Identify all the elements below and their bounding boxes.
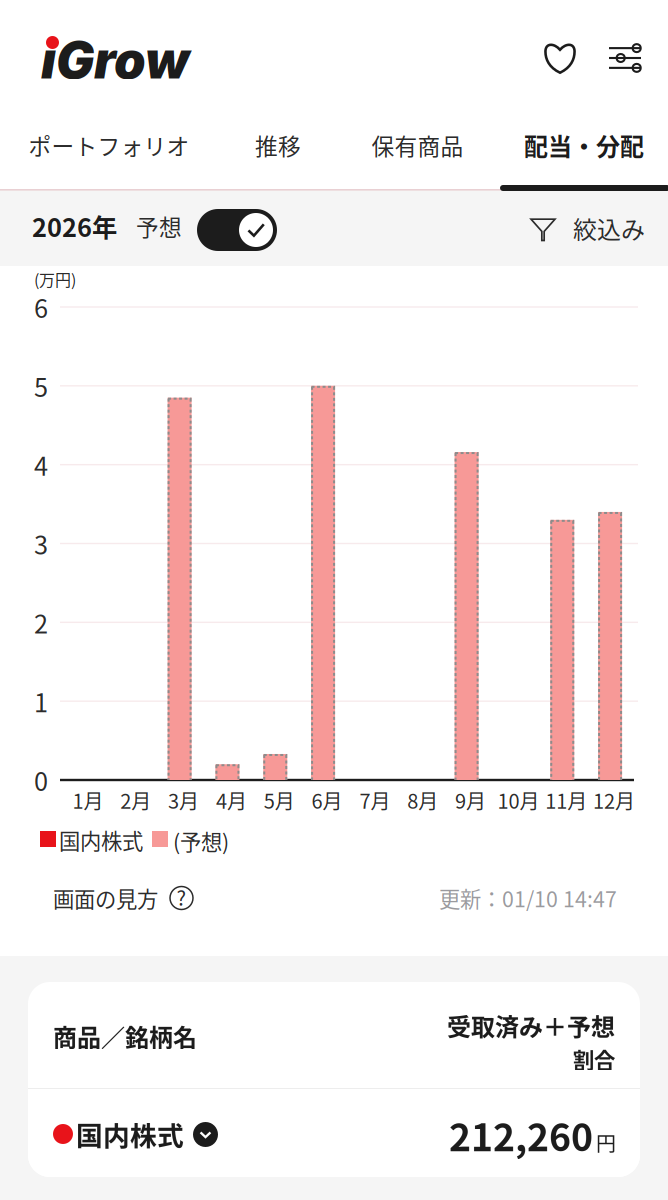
- button[interactable]: 保有商品: [365, 125, 470, 165]
- staticText: 10月: [497, 785, 539, 814]
- staticText: 国内株式: [59, 825, 143, 855]
- staticText: 国内株式: [76, 1115, 184, 1153]
- staticText: 更新：01/10 14:47: [439, 883, 617, 913]
- staticText: (予想): [173, 826, 229, 856]
- staticText: 4: [34, 446, 48, 483]
- staticText: 9月: [455, 785, 486, 814]
- staticText: 1月: [72, 785, 103, 814]
- staticText: 絞込み: [573, 211, 645, 245]
- staticText: 6月: [312, 785, 343, 814]
- staticText: 2026年: [32, 208, 117, 244]
- button[interactable]: 予想表示切替: [197, 209, 277, 251]
- staticText: 0: [34, 762, 48, 798]
- staticText: 212,260: [449, 1108, 593, 1162]
- button[interactable]: 絞込み: [530, 208, 645, 248]
- staticText: 6: [34, 289, 48, 325]
- staticText: ポートフォリオ: [28, 129, 189, 161]
- staticText: 5: [34, 367, 48, 404]
- staticText: 3: [34, 525, 48, 562]
- staticText: 商品／銘柄名: [53, 1019, 197, 1053]
- staticText: 予想: [136, 210, 182, 242]
- button[interactable]: 推移: [248, 125, 308, 165]
- staticText: 2: [34, 604, 48, 641]
- button[interactable]: お気に入り: [544, 42, 576, 74]
- staticText: 3月: [168, 785, 199, 814]
- staticText: 1: [34, 683, 48, 719]
- staticText: 11月: [545, 785, 587, 814]
- staticText: 割合: [573, 1044, 615, 1075]
- staticText: 4月: [216, 785, 247, 814]
- staticText: 5月: [264, 785, 295, 814]
- staticText: 受取済み＋予想: [447, 1008, 615, 1043]
- staticText: 推移: [255, 129, 301, 161]
- button[interactable]: ポートフォリオ: [24, 125, 194, 165]
- staticText: 12月: [593, 785, 635, 814]
- staticText: 円: [596, 1128, 616, 1157]
- staticText: 8月: [407, 785, 438, 814]
- staticText: (万円): [34, 267, 76, 291]
- staticText: 画面の見方: [53, 883, 158, 913]
- staticText: 保有商品: [371, 129, 463, 161]
- button[interactable]: 国内株式: [28, 1089, 640, 1177]
- button[interactable]: 配当・分配: [513, 125, 655, 165]
- staticText: ?: [176, 882, 186, 912]
- staticText: 7月: [359, 785, 390, 814]
- staticText: 配当・分配: [524, 128, 644, 162]
- button[interactable]: 設定: [609, 45, 641, 71]
- staticText: iGrow: [41, 29, 189, 91]
- staticText: 2月: [120, 785, 151, 814]
- button[interactable]: 画面の見方: [53, 881, 193, 915]
